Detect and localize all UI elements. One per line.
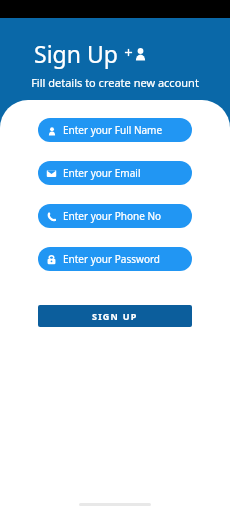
button[interactable]: Enter your Phone No xyxy=(38,204,192,228)
staticText: Enter your Password xyxy=(63,252,161,266)
staticText: Sign Up xyxy=(34,38,118,69)
button[interactable]: Enter your Full Name xyxy=(38,118,192,142)
staticText: Fill details to create new account xyxy=(0,75,230,90)
staticText: Enter your Full Name xyxy=(63,123,163,137)
button[interactable]: Enter your Email xyxy=(38,161,192,185)
button[interactable]: Enter your Password xyxy=(38,247,192,271)
staticText: Enter your Phone No xyxy=(63,209,162,223)
button[interactable]: SIGN UP xyxy=(38,305,192,327)
staticText: SIGN UP xyxy=(92,310,138,322)
staticText: Enter your Email xyxy=(63,166,141,180)
